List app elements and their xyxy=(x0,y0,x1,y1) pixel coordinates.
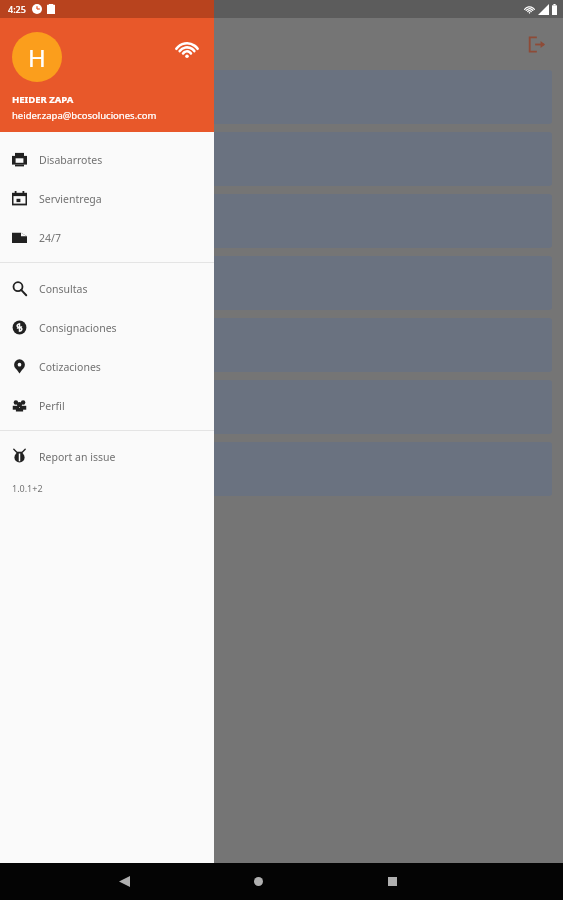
button[interactable] xyxy=(0,132,552,186)
button[interactable]: Servientrega xyxy=(0,179,214,218)
staticText: H xyxy=(28,41,46,74)
button[interactable]: Report an issue xyxy=(0,437,214,476)
button[interactable]: Consignaciones xyxy=(0,308,214,347)
button[interactable]: Log out xyxy=(519,27,553,61)
button[interactable]: Consultas xyxy=(0,269,214,308)
button[interactable]: Home xyxy=(238,863,278,900)
staticText: Cotizaciones xyxy=(39,360,101,374)
button[interactable]: Connection status xyxy=(172,34,202,64)
button[interactable]: Perfil xyxy=(0,386,214,425)
staticText: heider.zapa@bcosoluciones.com xyxy=(12,109,157,122)
staticText: 4:25 xyxy=(8,3,26,15)
staticText: Report an issue xyxy=(39,450,116,464)
button[interactable] xyxy=(0,442,552,496)
staticText: Consignaciones xyxy=(39,321,117,335)
button[interactable]: Cotizaciones xyxy=(0,347,214,386)
staticText: HEIDER ZAPA xyxy=(12,93,74,106)
button[interactable] xyxy=(0,380,552,434)
button[interactable] xyxy=(0,70,552,124)
staticText: 24/7 xyxy=(39,231,61,245)
button[interactable]: Disabarrotes xyxy=(0,140,214,179)
button[interactable]: Recents xyxy=(372,863,412,900)
button[interactable] xyxy=(0,318,552,372)
button[interactable]: 24/7 xyxy=(0,218,214,257)
staticText: 1.0.1+2 xyxy=(12,482,43,494)
staticText: Perfil xyxy=(39,399,65,413)
button[interactable] xyxy=(0,194,552,248)
button[interactable]: Back xyxy=(104,863,144,900)
staticText: Disabarrotes xyxy=(39,153,103,167)
staticText: Consultas xyxy=(39,282,88,296)
staticText: Servientrega xyxy=(39,192,102,206)
button[interactable] xyxy=(0,256,552,310)
